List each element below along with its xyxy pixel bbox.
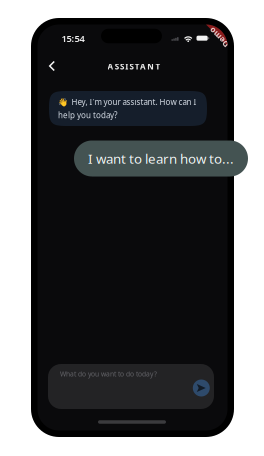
button[interactable]: Send	[188, 375, 214, 401]
staticText: Demo	[207, 32, 231, 43]
staticText: What do you want to do today?	[60, 370, 157, 378]
staticText: ASSISTANT	[107, 61, 160, 72]
staticText: 15:54	[61, 32, 84, 45]
staticText: I want to learn how to...	[88, 150, 234, 167]
staticText: 👋	[58, 97, 68, 106]
staticText: help you today?	[58, 110, 117, 120]
staticText: Hey, I'm your assistant. How can I	[71, 97, 196, 107]
button[interactable]: Back	[39, 54, 65, 78]
